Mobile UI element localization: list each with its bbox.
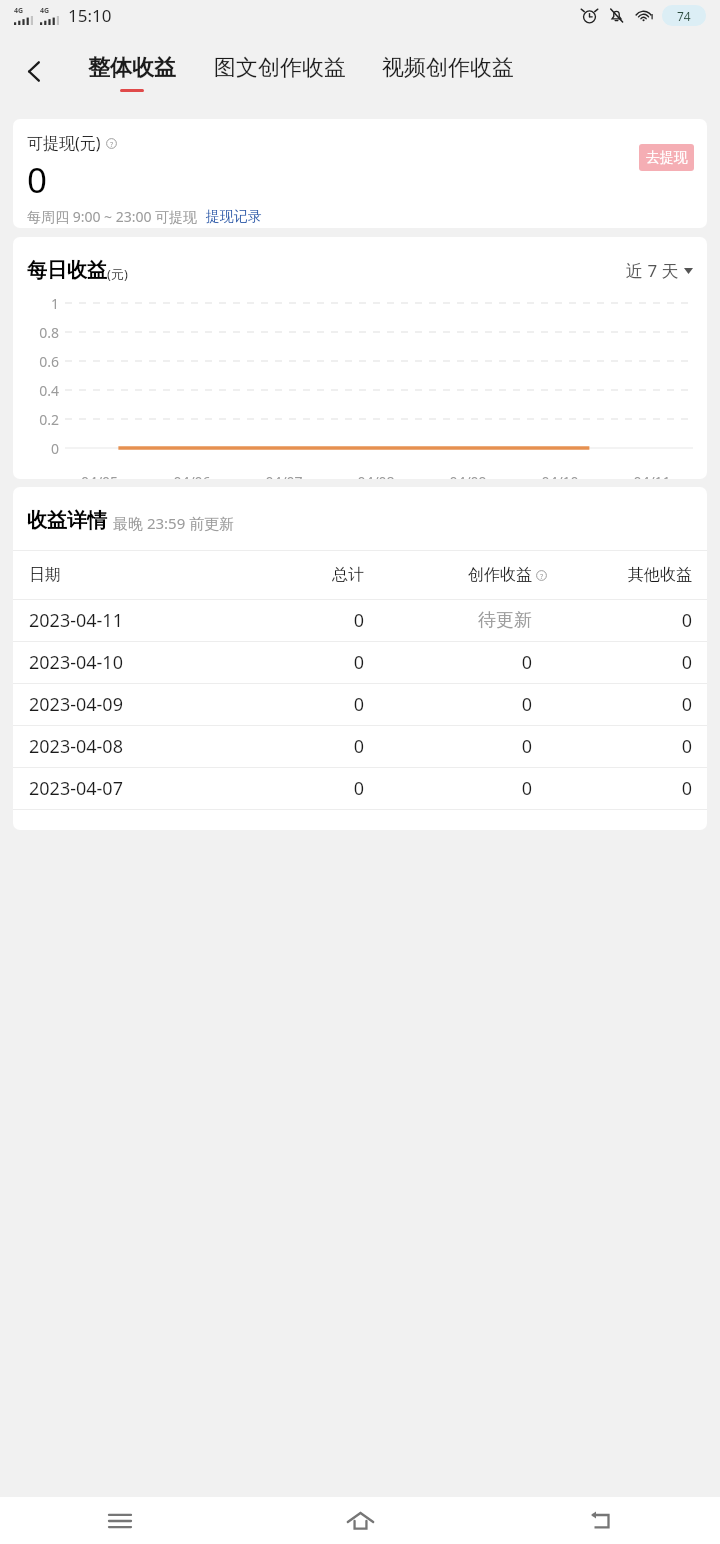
staticText: 0: [219, 692, 364, 717]
staticText: 04/05: [53, 472, 146, 479]
staticText: 总计: [219, 565, 364, 585]
staticText: 可提现(元): [27, 132, 101, 154]
staticText: 0: [27, 156, 48, 204]
staticText: 去提现: [646, 149, 688, 167]
staticText: 4G: [14, 6, 24, 16]
button[interactable]: 整体收益: [86, 51, 178, 95]
staticText: 视频创作收益: [382, 54, 514, 82]
staticText: 0: [364, 776, 532, 801]
button[interactable]: 2023-04-09: [13, 684, 707, 725]
staticText: 2023-04-10: [29, 650, 219, 675]
button[interactable]: 提现记录: [206, 208, 262, 226]
staticText: 收益详情: [27, 508, 107, 533]
staticText: 74: [677, 8, 691, 24]
staticText: ?: [110, 139, 114, 149]
staticText: 提现记录: [206, 208, 262, 226]
button[interactable]: 去提现: [639, 144, 694, 171]
staticText: 0: [364, 734, 532, 759]
staticText: 0: [547, 692, 692, 717]
staticText: 0: [219, 650, 364, 675]
staticText: 4G: [40, 6, 50, 16]
staticText: 0.8: [13, 323, 59, 342]
staticText: 0: [219, 776, 364, 801]
button[interactable]: 视频创作收益: [380, 51, 516, 95]
button[interactable]: Home: [240, 1497, 480, 1544]
staticText: 其他收益: [547, 565, 692, 585]
staticText: 0.4: [13, 381, 59, 400]
button[interactable]: Recent apps: [0, 1497, 240, 1544]
staticText: 0.6: [13, 352, 59, 371]
staticText: 04/10: [514, 472, 606, 479]
staticText: 2023-04-09: [29, 692, 219, 717]
staticText: 0.2: [13, 410, 59, 429]
button[interactable]: 2023-04-10: [13, 642, 707, 683]
staticText: 整体收益: [88, 54, 176, 82]
staticText: 04/08: [330, 472, 422, 479]
staticText: 0: [364, 650, 532, 675]
staticText: 日期: [29, 565, 219, 585]
staticText: 0: [364, 692, 532, 717]
staticText: ?: [540, 571, 544, 581]
button[interactable]: 图文创作收益: [212, 51, 348, 95]
staticText: 0: [547, 776, 692, 801]
button[interactable]: Back: [10, 47, 58, 95]
staticText: 15:10: [68, 4, 112, 27]
button[interactable]: 2023-04-07: [13, 768, 707, 809]
staticText: 图文创作收益: [214, 54, 346, 82]
staticText: 每周四 9:00 ~ 23:00 可提现: [27, 207, 198, 226]
staticText: 2023-04-07: [29, 776, 219, 801]
staticText: 0: [13, 439, 59, 458]
staticText: 04/11: [606, 472, 698, 479]
staticText: 0: [219, 608, 364, 633]
staticText: 0: [547, 650, 692, 675]
staticText: 04/09: [422, 472, 514, 479]
staticText: 创作收益: [468, 565, 532, 585]
staticText: 待更新: [364, 609, 532, 632]
staticText: 0: [547, 608, 692, 633]
staticText: 0: [219, 734, 364, 759]
staticText: 04/07: [238, 472, 330, 479]
staticText: 近 7 天: [626, 259, 679, 282]
button[interactable]: 2023-04-11: [13, 600, 707, 641]
staticText: 2023-04-11: [29, 608, 219, 633]
staticText: (元): [107, 265, 128, 283]
staticText: 1: [13, 294, 59, 313]
button[interactable]: 2023-04-08: [13, 726, 707, 767]
button[interactable]: 近 7 天: [626, 259, 693, 282]
staticText: 0: [547, 734, 692, 759]
button[interactable]: Back: [480, 1497, 720, 1544]
staticText: 04/06: [146, 472, 238, 479]
staticText: 每日收益: [27, 258, 107, 283]
staticText: 最晚 23:59 前更新: [113, 513, 235, 533]
staticText: 2023-04-08: [29, 734, 219, 759]
